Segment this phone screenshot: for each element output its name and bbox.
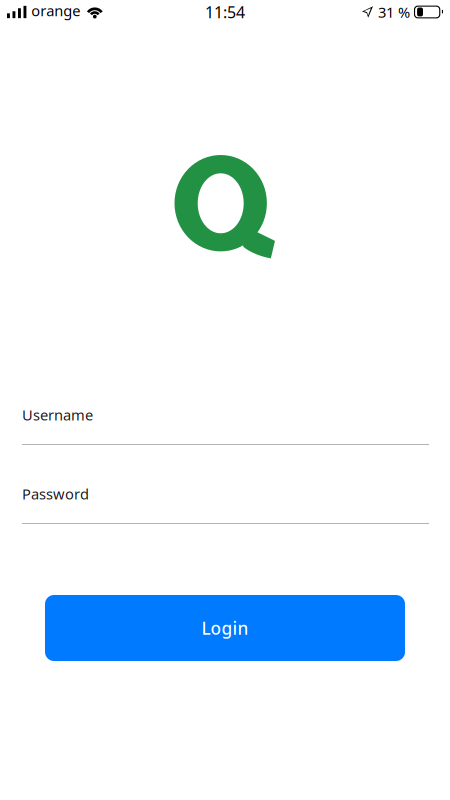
- button[interactable]: Login: [45, 595, 405, 661]
- staticText: 31 %: [378, 2, 410, 22]
- staticText: Login: [201, 616, 248, 639]
- staticText: Username: [22, 405, 93, 424]
- staticText: 11:54: [205, 1, 245, 23]
- staticText: Password: [22, 484, 89, 503]
- button[interactable]: Password: [22, 484, 429, 524]
- staticText: orange: [31, 1, 80, 20]
- button[interactable]: Username: [22, 405, 429, 445]
